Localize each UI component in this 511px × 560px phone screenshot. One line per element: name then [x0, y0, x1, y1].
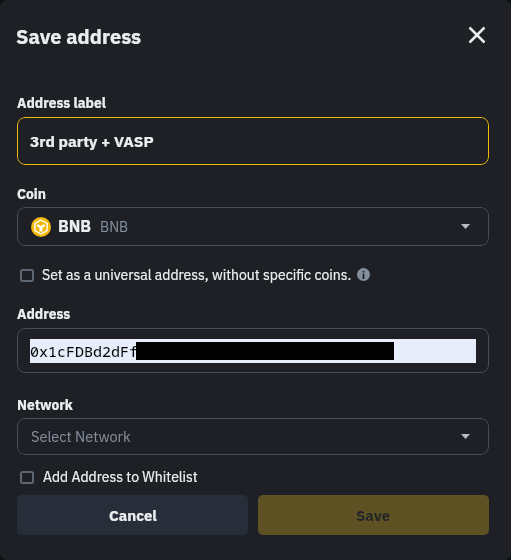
button[interactable]: Set as a universal address, without spec…: [20, 266, 370, 284]
button[interactable]: Save: [258, 495, 489, 535]
button[interactable]: BNB: [17, 207, 489, 246]
staticText: Save: [356, 506, 391, 526]
button[interactable]: 3rd party + VASP: [17, 117, 489, 165]
staticText: Select Network: [31, 427, 131, 446]
staticText: Address label: [17, 94, 106, 112]
button[interactable]: Add Address to Whitelist: [20, 468, 198, 486]
staticText: Cancel: [109, 506, 157, 526]
staticText: Coin: [17, 185, 46, 203]
staticText: Address: [17, 305, 71, 323]
staticText: BNB: [58, 216, 91, 237]
staticText: Add Address to Whitelist: [43, 468, 198, 486]
staticText: 3rd party + VASP: [30, 131, 154, 151]
button[interactable]: Select Network: [17, 418, 489, 455]
staticText: Set as a universal address, without spec…: [42, 266, 352, 284]
button[interactable]: Close: [462, 20, 492, 50]
button[interactable]: 0x1cFDBd2dFf: [17, 328, 489, 373]
staticText: BNB: [100, 218, 129, 236]
staticText: 0x1cFDBd2dFf: [30, 341, 139, 361]
staticText: Network: [17, 396, 73, 414]
staticText: Save address: [16, 23, 142, 49]
button[interactable]: Cancel: [17, 495, 248, 535]
